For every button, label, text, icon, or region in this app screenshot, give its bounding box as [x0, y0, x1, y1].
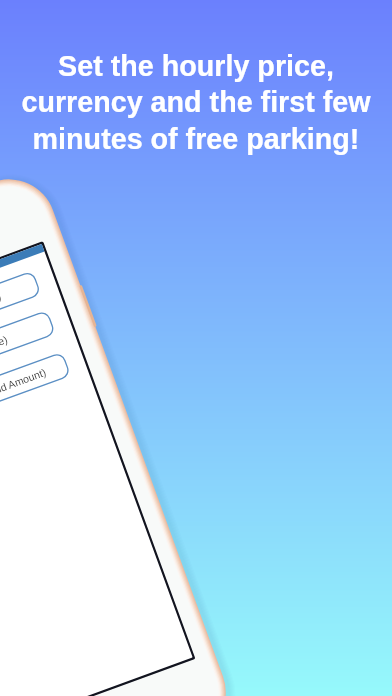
staticText: Hourly Price (Amount): [0, 289, 3, 336]
staticText: Set the hourly price, currency and the f…: [21, 50, 371, 155]
staticText: Free Parking (Round Amount): [0, 366, 48, 425]
staticText: Currency (Name): [0, 333, 9, 372]
